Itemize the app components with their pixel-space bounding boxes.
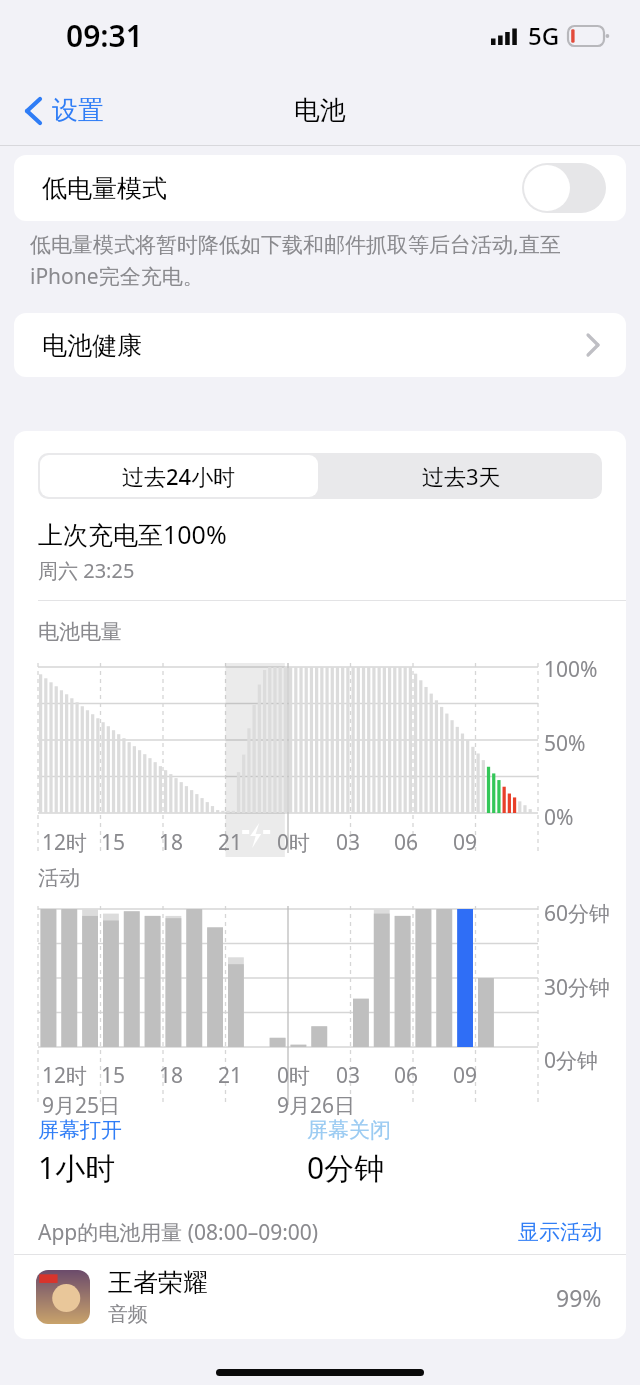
staticText: 屏幕关闭 <box>307 1117 391 1143</box>
staticText: 低电量模式 <box>42 173 167 204</box>
staticText: 50% <box>544 729 586 758</box>
button[interactable]: 过去3天 <box>320 453 602 499</box>
staticText: 15 <box>101 828 126 857</box>
button[interactable]: Low Power Mode toggle <box>522 163 606 213</box>
staticText: 过去3天 <box>422 461 501 491</box>
staticText: 0时 <box>277 1061 311 1090</box>
staticText: 0时 <box>277 828 311 857</box>
staticText: 15 <box>101 1061 126 1090</box>
staticText: 99% <box>556 1282 602 1313</box>
staticText: 06 <box>394 828 419 857</box>
staticText: 上次充电至100% <box>38 517 227 551</box>
staticText: 音频 <box>108 1302 148 1327</box>
staticText: 18 <box>159 828 184 857</box>
button[interactable]: 电池健康 <box>14 313 626 377</box>
staticText: 设置 <box>52 94 104 127</box>
staticText: 03 <box>336 1061 361 1090</box>
staticText: 9月26日 <box>277 1091 356 1120</box>
staticText: 03 <box>336 828 361 857</box>
staticText: 06 <box>394 1061 419 1090</box>
staticText: 21 <box>218 1061 243 1090</box>
staticText: 活动 <box>38 865 80 891</box>
staticText: 0分钟 <box>307 1147 385 1188</box>
button[interactable]: 王者荣耀 <box>14 1255 626 1339</box>
staticText: 18 <box>159 1061 184 1090</box>
staticText: App的电池用量 (08:00–09:00) <box>38 1218 518 1247</box>
staticText: 过去24小时 <box>122 461 236 491</box>
staticText: 电池健康 <box>42 330 142 361</box>
staticText: 12时 <box>42 828 88 857</box>
staticText: 电池电量 <box>38 619 122 645</box>
staticText: 100% <box>544 655 598 684</box>
staticText: 电池 <box>294 94 346 127</box>
staticText: 周六 23:25 <box>38 557 135 584</box>
staticText: 21 <box>218 828 243 857</box>
staticText: 1小时 <box>38 1147 116 1188</box>
staticText: 9月25日 <box>42 1091 121 1120</box>
staticText: 0分钟 <box>544 1046 599 1075</box>
button[interactable]: 过去24小时 <box>40 455 318 497</box>
staticText: 09 <box>453 828 478 857</box>
staticText: 30分钟 <box>544 973 611 1002</box>
staticText: 12时 <box>42 1061 88 1090</box>
staticText: iPhone完全充电。 <box>30 262 204 291</box>
staticText: 屏幕打开 <box>38 1117 122 1143</box>
button[interactable]: 设置 <box>16 88 112 133</box>
button[interactable]: 显示活动 <box>518 1219 602 1245</box>
staticText: 0% <box>544 803 574 832</box>
staticText: 显示活动 <box>518 1219 602 1245</box>
staticText: 09 <box>453 1061 478 1090</box>
staticText: 60分钟 <box>544 899 611 928</box>
staticText: 王者荣耀 <box>108 1267 208 1298</box>
staticText: 09:31 <box>66 15 143 56</box>
button[interactable]: 低电量模式 <box>14 155 626 221</box>
staticText: 低电量模式将暂时降低如下载和邮件抓取等后台活动,直至 <box>30 230 561 259</box>
staticText: 5G <box>528 19 560 52</box>
